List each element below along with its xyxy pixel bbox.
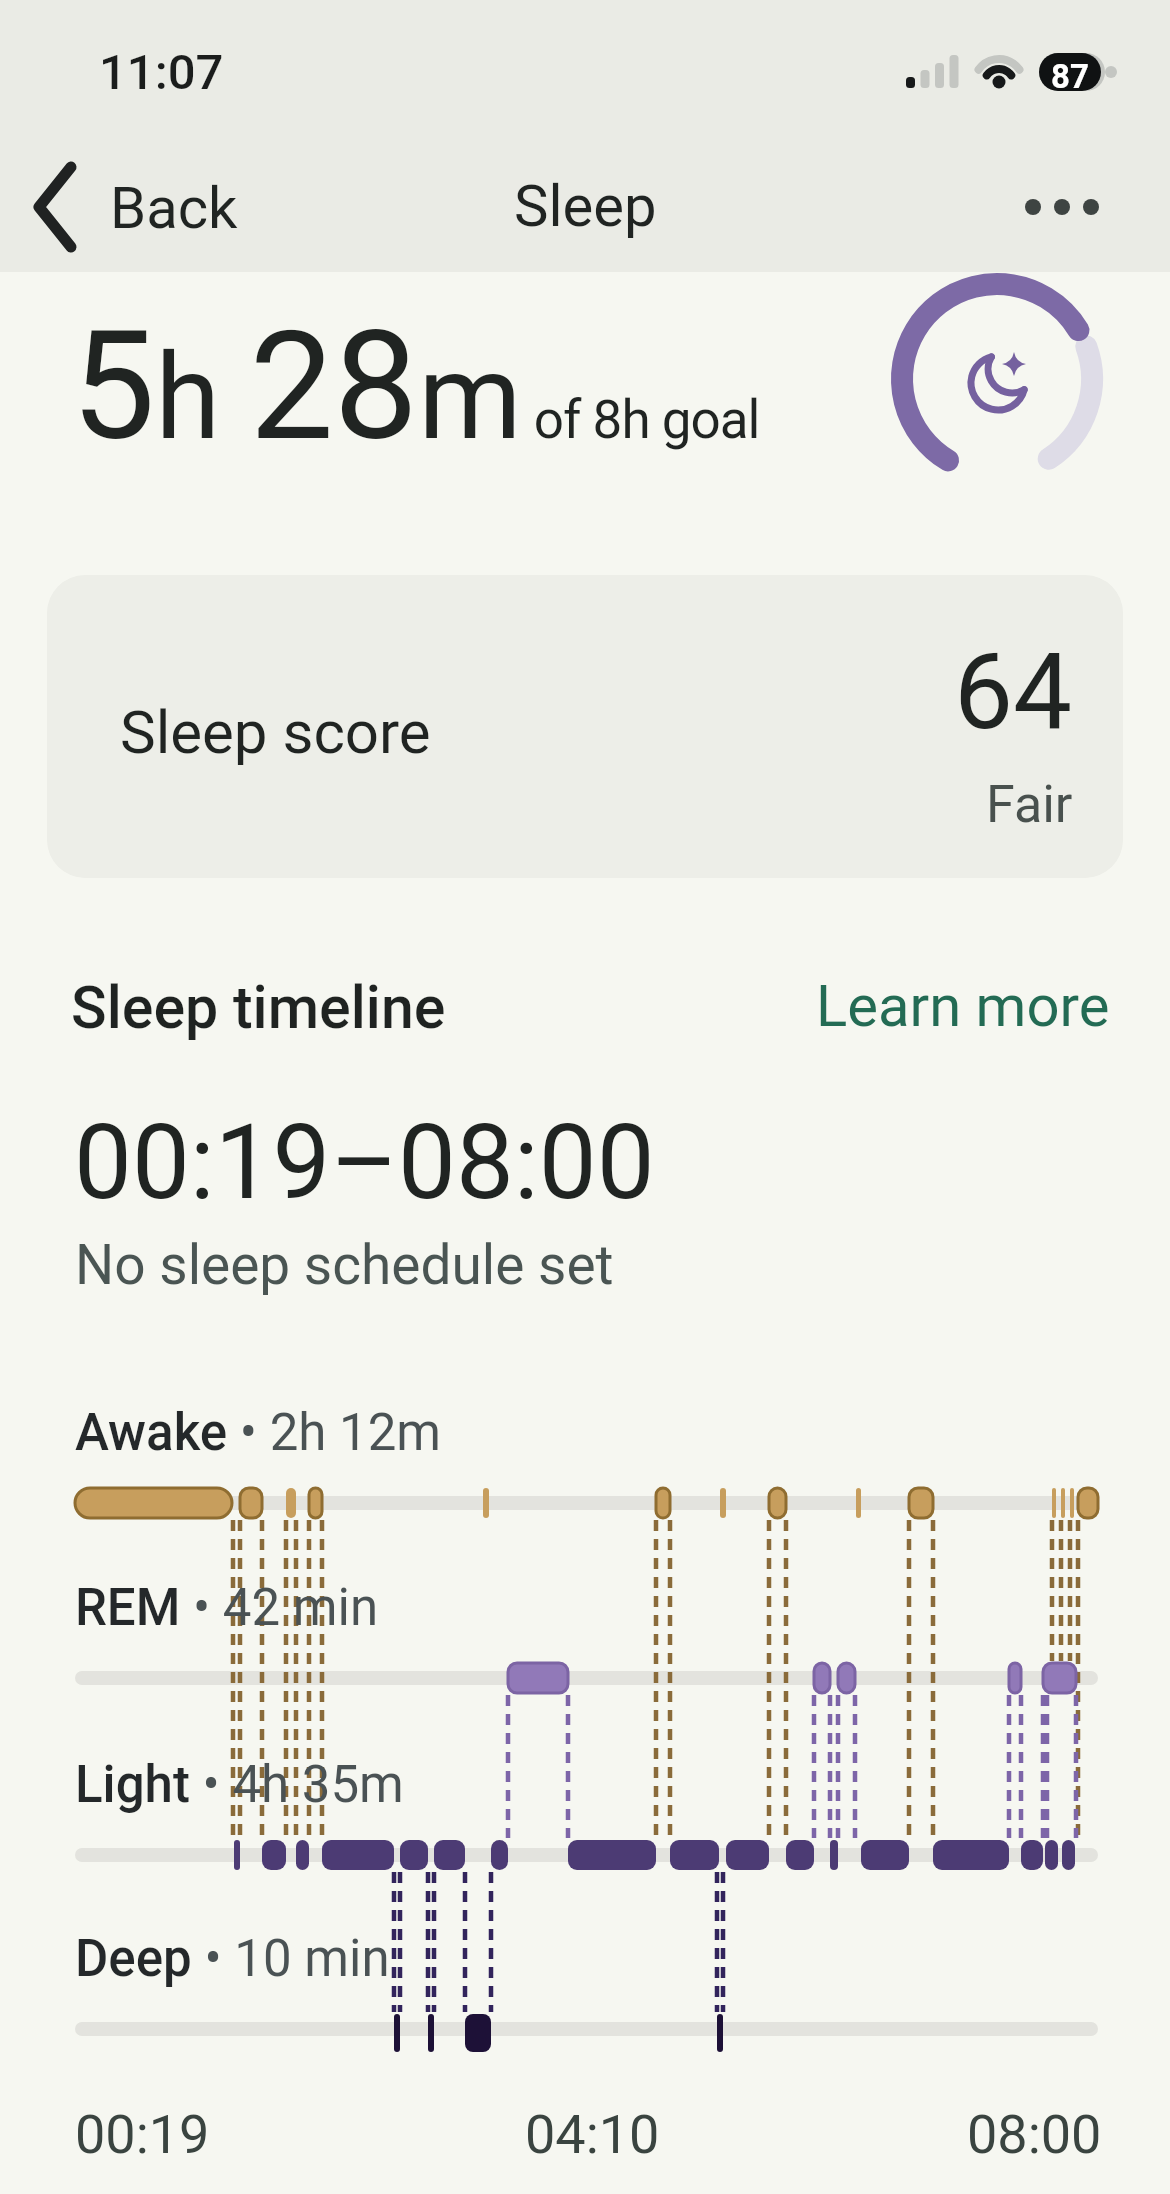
staticText: Back — [110, 174, 238, 242]
staticText: Deep • 10 min — [75, 1929, 390, 1989]
staticText: Sleep timeline — [71, 973, 446, 1042]
staticText: Awake • 2h 12m — [75, 1403, 442, 1463]
button[interactable] — [47, 575, 1123, 878]
staticText: 64 — [954, 631, 1073, 754]
staticText: No sleep schedule set — [75, 1233, 614, 1297]
staticText: 00:19 — [75, 2103, 210, 2166]
staticText: 00:19–08:00 — [74, 1102, 655, 1223]
button[interactable] — [810, 965, 1120, 1045]
staticText: 5h 28m of 8h goal — [71, 299, 760, 475]
staticText: Sleep — [514, 172, 657, 240]
staticText: REM • 42 min — [75, 1578, 379, 1638]
staticText: Fair — [986, 774, 1073, 835]
staticText: 11:07 — [99, 44, 224, 101]
staticText: 08:00 — [967, 2103, 1102, 2166]
button[interactable] — [1005, 165, 1115, 250]
staticText: Sleep score — [120, 697, 431, 767]
staticText: Light • 4h 35m — [75, 1755, 404, 1815]
staticText: Learn more — [816, 972, 1110, 1040]
button[interactable]: Back — [25, 155, 245, 260]
staticText: 04:10 — [525, 2103, 660, 2166]
staticText: 87 — [1039, 57, 1101, 96]
